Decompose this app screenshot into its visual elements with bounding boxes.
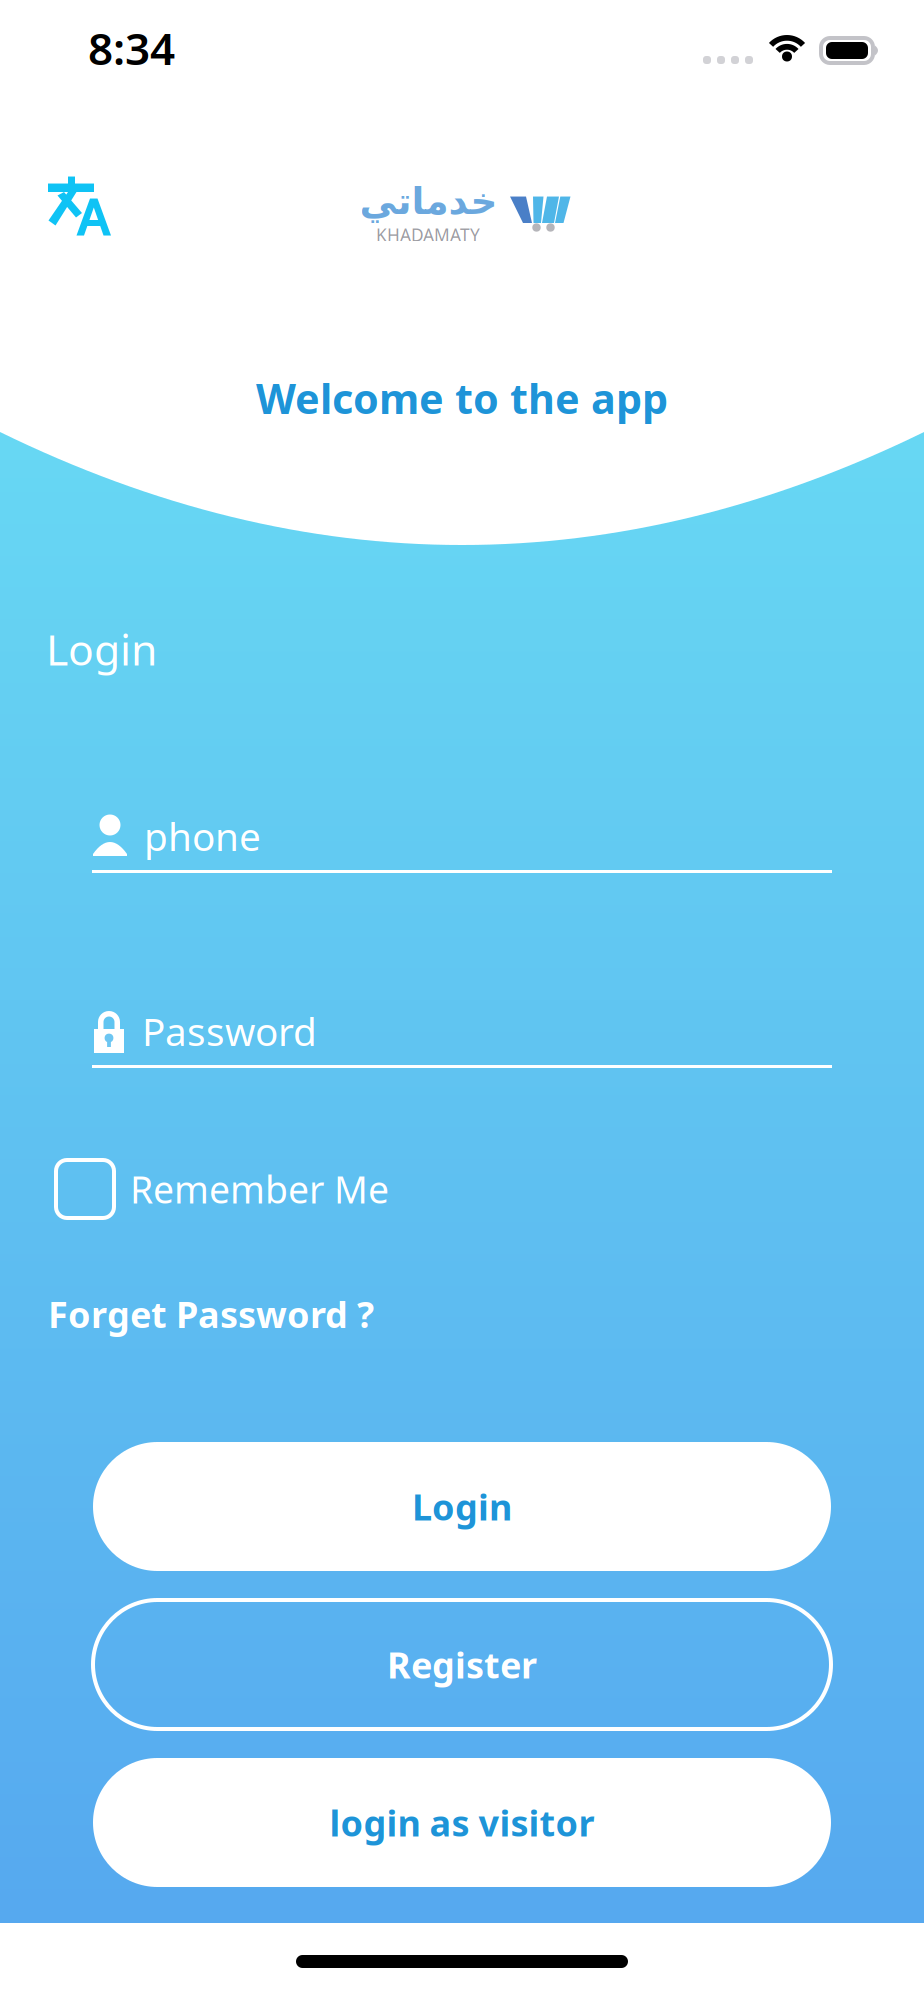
- staticText: Password: [142, 1005, 317, 1057]
- staticText: Register: [387, 1641, 537, 1688]
- staticText: Forget Password ?: [48, 1290, 374, 1338]
- button[interactable]: Register: [93, 1600, 831, 1729]
- staticText: Remember Me: [130, 1164, 389, 1214]
- button[interactable]: Login: [93, 1442, 831, 1571]
- staticText: خدماتي: [359, 180, 497, 222]
- button[interactable]: Forget Password ?: [0, 1285, 924, 1343]
- staticText: Login: [46, 621, 157, 677]
- button[interactable]: Remember Me: [0, 1154, 924, 1224]
- staticText: KHADAMATY: [376, 223, 480, 246]
- staticText: phone: [144, 810, 261, 862]
- button[interactable]: Change language: [48, 176, 112, 235]
- staticText: 8:34: [88, 19, 175, 77]
- staticText: Login: [412, 1483, 512, 1530]
- staticText: Welcome to the app: [256, 371, 668, 425]
- staticText: login as visitor: [329, 1799, 594, 1846]
- button[interactable]: login as visitor: [93, 1758, 831, 1887]
